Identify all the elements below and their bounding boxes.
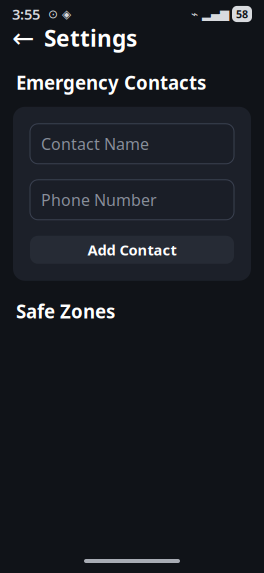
staticText: ← (12, 23, 34, 53)
staticText: 3:55 (12, 4, 40, 24)
button[interactable]: Add Contact (30, 236, 234, 264)
staticText: Add Contact (87, 240, 176, 260)
staticText: Safe Zones (16, 299, 115, 324)
staticText: Settings (44, 23, 137, 53)
staticText: Phone Number (41, 189, 157, 210)
staticText: Emergency Contacts (16, 70, 206, 95)
staticText: ⌁ ▂▄▆ (191, 7, 229, 21)
staticText: ⊙ ◈ (40, 7, 71, 21)
button[interactable]: Back (6, 23, 40, 53)
staticText: Contact Name (41, 133, 149, 154)
staticText: 58 (236, 7, 248, 21)
